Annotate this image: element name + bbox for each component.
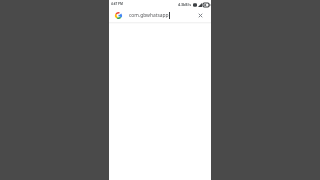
staticText: 4:47 PM — [111, 2, 123, 6]
button[interactable]: com.gbwhatsapp — [109, 8, 211, 22]
staticText: 4.3kB/s — [178, 2, 192, 7]
button[interactable]: Clear search — [195, 10, 206, 21]
staticText: com.gbwhatsapp — [129, 12, 169, 19]
